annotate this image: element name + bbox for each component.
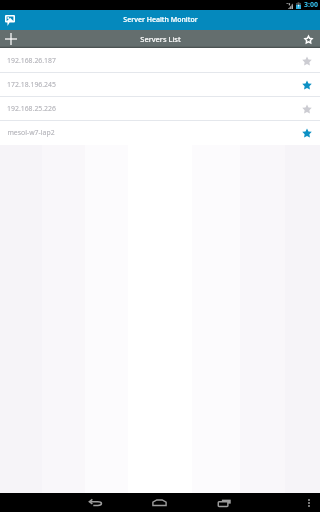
staticText: Server Health Monitor: [123, 15, 198, 25]
button[interactable]: Add server: [0, 30, 22, 48]
staticText: 3:00: [304, 0, 318, 10]
button[interactable]: Back: [79, 493, 111, 512]
button[interactable]: mesol-w7-lap2: [0, 121, 320, 145]
button[interactable]: 192.168.26.187: [0, 49, 320, 73]
staticText: 172.18.196.245: [7, 80, 56, 89]
button[interactable]: Server Health Monitor app icon: [2, 12, 18, 28]
button[interactable]: 172.18.196.245: [0, 73, 320, 97]
staticText: Servers List: [140, 34, 181, 44]
staticText: 192.168.26.187: [7, 56, 56, 65]
button[interactable]: 192.168.25.226: [0, 97, 320, 121]
staticText: 192.168.25.226: [7, 104, 56, 113]
staticText: mesol-w7-lap2: [7, 128, 55, 137]
button[interactable]: Show favorites: [296, 30, 320, 48]
button[interactable]: Recent apps: [208, 493, 240, 512]
button[interactable]: More options: [303, 493, 315, 512]
button[interactable]: Home: [143, 493, 175, 512]
